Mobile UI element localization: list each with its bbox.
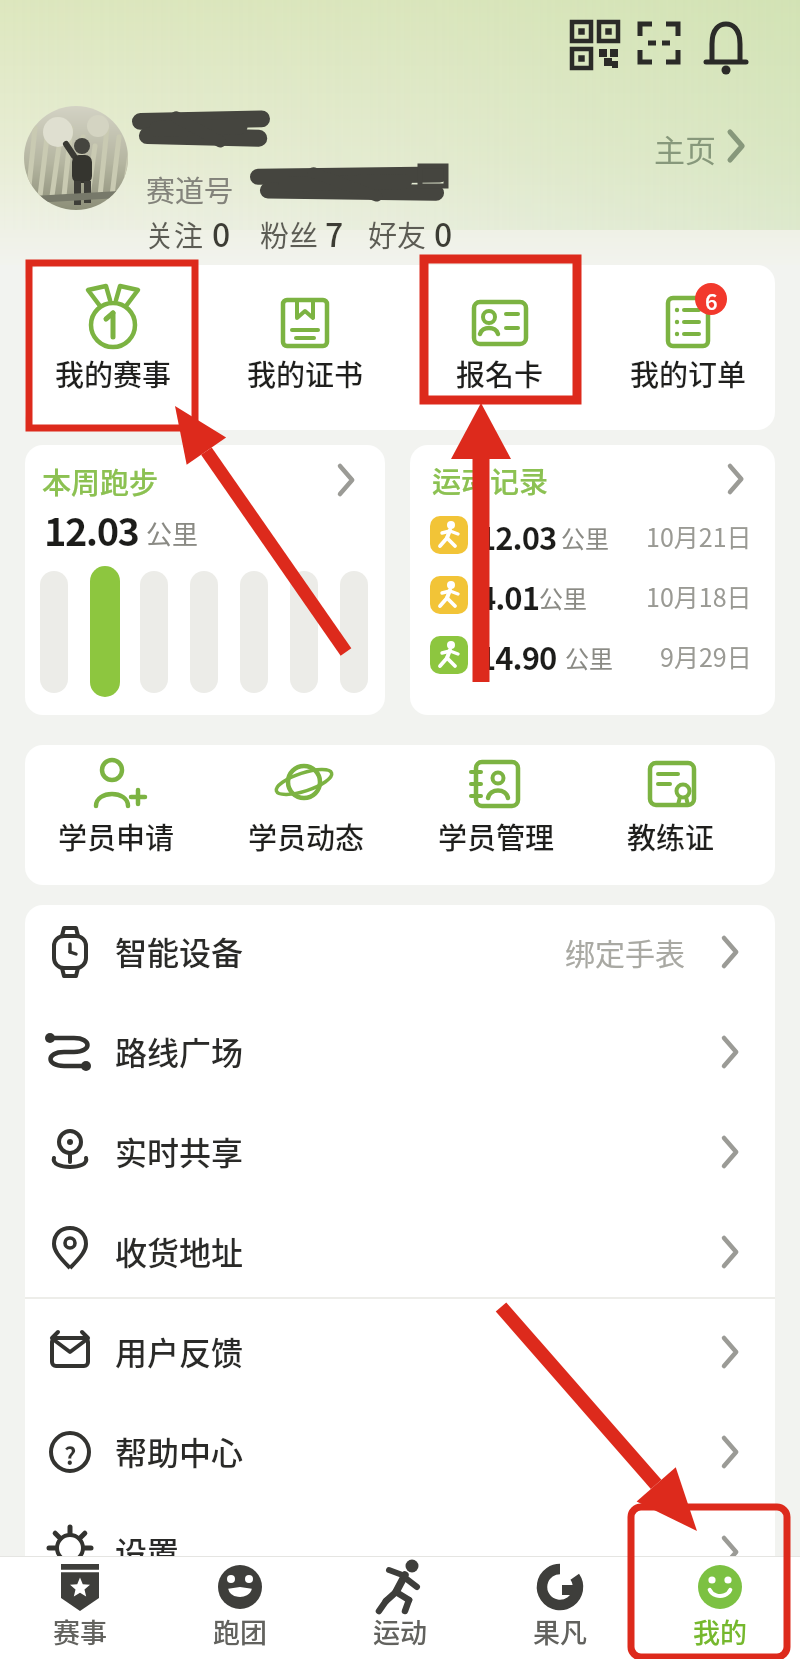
staticText: 10月18日 — [646, 578, 752, 614]
staticText: 我的赛事 — [55, 352, 172, 394]
staticText: 教练证 — [627, 815, 715, 857]
staticText: 6 — [705, 284, 718, 316]
staticText: 主页 — [654, 126, 716, 171]
staticText: 赛事 — [53, 1612, 107, 1651]
button[interactable] — [31, 748, 201, 882]
staticText: 学员申请 — [58, 815, 175, 857]
staticText: 学员管理 — [438, 815, 555, 857]
staticText: 实时共享 — [115, 1128, 244, 1174]
button[interactable] — [25, 1502, 775, 1602]
staticText: 14.90 — [478, 634, 557, 679]
staticText: 跑团 — [213, 1612, 267, 1651]
staticText: 公里 — [561, 520, 609, 555]
staticText: 运动 — [373, 1612, 427, 1651]
button[interactable] — [25, 1402, 775, 1502]
button[interactable] — [586, 748, 756, 882]
staticText: 公里 — [539, 580, 587, 615]
button[interactable] — [603, 270, 773, 428]
staticText: 智能设备 — [115, 928, 244, 974]
button[interactable] — [221, 748, 391, 882]
button[interactable] — [25, 1102, 775, 1202]
button[interactable] — [411, 748, 581, 882]
staticText: 学员动态 — [248, 815, 365, 857]
staticText: 用户反馈 — [115, 1328, 244, 1374]
button[interactable] — [25, 1302, 775, 1402]
staticText: 0 — [212, 210, 231, 256]
staticText: 0 — [434, 210, 453, 256]
button[interactable] — [20, 1558, 140, 1658]
button[interactable] — [25, 445, 385, 715]
staticText: 公里 — [565, 640, 613, 675]
staticText: 绑定手表 — [565, 930, 685, 973]
button[interactable] — [25, 1002, 775, 1102]
staticText: 好友 — [368, 213, 427, 255]
staticText: 9月29日 — [660, 638, 752, 674]
staticText: 本周跑步 — [42, 460, 159, 502]
button[interactable] — [500, 1558, 620, 1658]
staticText: 粉丝 — [260, 213, 319, 255]
button[interactable] — [180, 1558, 300, 1658]
staticText: 果凡 — [533, 1612, 587, 1651]
staticText: 帮助中心 — [115, 1428, 244, 1474]
staticText: 路线广场 — [115, 1028, 244, 1074]
button[interactable] — [220, 270, 390, 428]
staticText: 我的证书 — [247, 352, 364, 394]
button[interactable] — [410, 445, 775, 715]
staticText: 公里 — [146, 514, 199, 552]
staticText: 关注 — [145, 213, 204, 255]
staticText: 我的 — [693, 1612, 747, 1651]
button[interactable] — [340, 1558, 460, 1658]
button[interactable] — [660, 1558, 780, 1658]
staticText: ? — [64, 1437, 77, 1472]
staticText: 设置 — [115, 1528, 180, 1574]
staticText: 12.03 — [478, 514, 557, 559]
staticText: 报名卡 — [456, 352, 544, 394]
button[interactable] — [25, 1202, 775, 1302]
staticText: 12.03 — [44, 502, 139, 557]
button[interactable] — [560, 14, 760, 74]
button[interactable] — [25, 902, 775, 1002]
staticText: 4.01 — [478, 574, 539, 619]
staticText: 7 — [325, 210, 344, 256]
staticText: 收货地址 — [115, 1228, 244, 1274]
staticText: 赛道号 — [146, 168, 234, 210]
button[interactable] — [28, 270, 198, 428]
button[interactable] — [24, 106, 128, 210]
staticText: 我的订单 — [630, 352, 747, 394]
button[interactable] — [415, 270, 585, 428]
staticText: 10月21日 — [646, 518, 752, 554]
staticText: 运动记录 — [432, 459, 549, 501]
button[interactable]: 主页 — [640, 120, 760, 170]
